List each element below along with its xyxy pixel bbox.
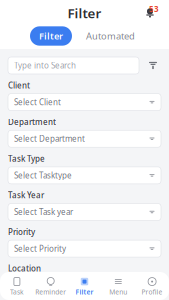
- button[interactable]: Reminder: [34, 277, 68, 297]
- staticText: Select Priority: [14, 243, 66, 254]
- staticText: Automated: [86, 30, 135, 42]
- staticText: Filter: [75, 288, 93, 296]
- staticText: Select Tasktype: [14, 170, 72, 181]
- staticText: Task Year: [8, 190, 44, 200]
- staticText: Menu: [109, 288, 127, 296]
- staticText: Task Type: [8, 153, 45, 164]
- button[interactable]: Select Task year: [8, 203, 161, 220]
- staticText: Profile: [142, 288, 163, 296]
- staticText: 53: [149, 4, 159, 14]
- staticText: Filter: [67, 4, 101, 22]
- button[interactable]: Filter: [30, 26, 72, 46]
- staticText: Reminder: [35, 288, 66, 296]
- button[interactable]: Menu: [101, 277, 135, 297]
- staticText: Select Task year: [14, 207, 73, 217]
- button[interactable]: Select Tasktype: [8, 167, 161, 184]
- button[interactable]: Select Department: [8, 130, 161, 147]
- button[interactable]: Notifications, 53 unread: [139, 3, 161, 23]
- button[interactable]: Automated: [82, 26, 139, 46]
- staticText: Priority: [8, 226, 35, 237]
- button[interactable]: Task: [0, 277, 34, 297]
- button[interactable]: Select Priority: [8, 240, 161, 257]
- staticText: Task: [10, 288, 24, 296]
- button[interactable]: Filter options: [145, 57, 161, 74]
- staticText: Select Department: [14, 133, 85, 144]
- staticText: Department: [8, 117, 56, 127]
- button[interactable]: Filter: [68, 277, 101, 297]
- button[interactable]: Select Client: [8, 94, 161, 111]
- staticText: Location: [8, 263, 41, 274]
- staticText: Client: [8, 80, 30, 91]
- staticText: Select Client: [14, 97, 61, 107]
- button[interactable]: Type into Search: [8, 57, 139, 74]
- staticText: Filter: [39, 30, 63, 42]
- staticText: Type into Search: [14, 60, 76, 71]
- button[interactable]: Profile: [135, 277, 169, 297]
